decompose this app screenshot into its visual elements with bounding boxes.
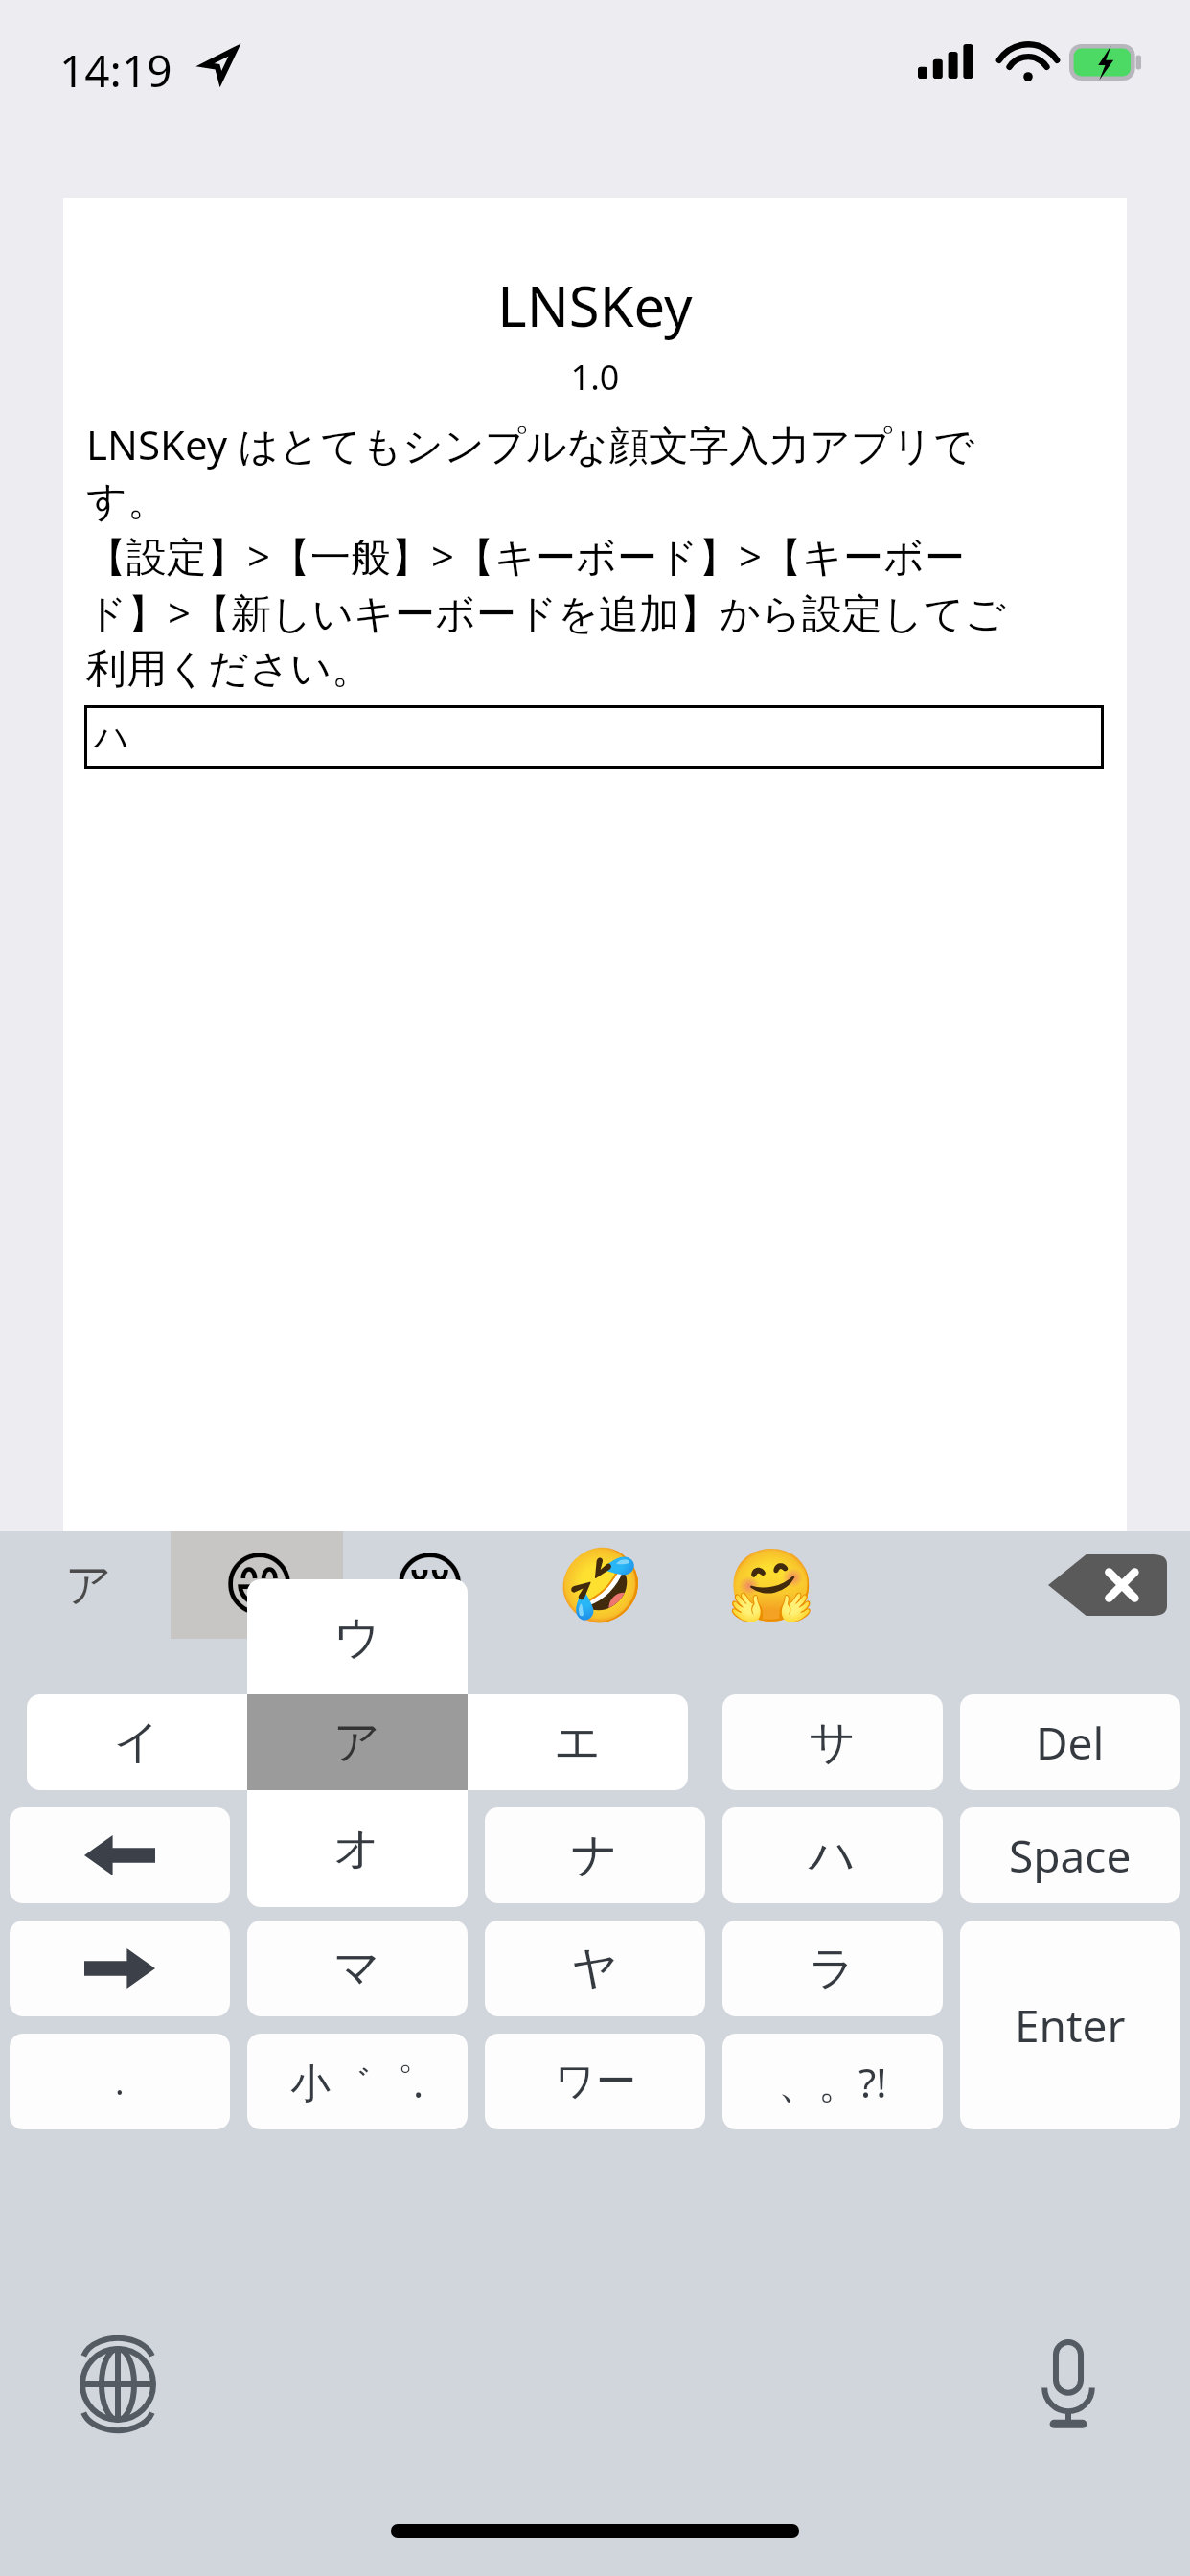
button[interactable]: ラ — [722, 1920, 943, 2016]
button[interactable]: Backspace — [1048, 1554, 1167, 1616]
button[interactable]: エ — [468, 1694, 688, 1790]
staticText: ウ — [333, 1609, 381, 1667]
staticText: Del — [1036, 1713, 1105, 1773]
button[interactable]: Move cursor right — [10, 1920, 230, 2016]
staticText: 🤣 — [557, 1544, 646, 1627]
button[interactable]: Del — [960, 1694, 1180, 1790]
button[interactable]: Space — [960, 1807, 1180, 1903]
button[interactable]: 小゛゜. — [247, 2034, 468, 2129]
button[interactable]: ア — [247, 1694, 468, 1790]
button[interactable]: サ — [722, 1694, 943, 1790]
button[interactable]: ハ — [722, 1807, 943, 1903]
staticText: 😢 — [393, 1544, 468, 1626]
staticText: 🤗 — [727, 1544, 816, 1627]
staticText: ハ — [94, 715, 129, 758]
staticText: LNSKey — [63, 267, 1127, 343]
staticText: 14:19 — [59, 40, 172, 101]
button[interactable]: 、。?! — [722, 2034, 943, 2129]
staticText: イ — [113, 1713, 161, 1771]
staticText: . — [115, 2058, 125, 2105]
button[interactable]: 😄 — [178, 1531, 341, 1639]
button[interactable]: オ — [247, 1790, 468, 1907]
button[interactable]: . — [10, 2034, 230, 2129]
button[interactable]: ハ — [84, 705, 1104, 769]
button[interactable]: ナ — [485, 1807, 705, 1903]
button[interactable]: Enter — [960, 1920, 1180, 2129]
staticText: ワー — [555, 2057, 636, 2107]
staticText: LNSKey はとてもシンプルな顔文字入力アプリです。 【設定】>【一般】>【キ… — [86, 417, 1044, 694]
staticText: ハ — [809, 1827, 857, 1884]
staticText: 1.0 — [63, 354, 1127, 401]
button[interactable]: 🤗 — [690, 1531, 853, 1639]
button[interactable]: Switch keyboard — [27, 2298, 209, 2471]
button[interactable]: ウ — [247, 1579, 468, 1696]
staticText: ヤ — [571, 1940, 619, 1997]
staticText: ラ — [809, 1940, 857, 1997]
staticText: ア — [65, 1556, 113, 1614]
staticText: 😄 — [222, 1544, 297, 1626]
staticText: ナ — [571, 1827, 619, 1884]
button[interactable]: Move cursor left — [10, 1807, 230, 1903]
staticText: 、。?! — [778, 2055, 887, 2109]
button[interactable]: ア — [8, 1531, 171, 1639]
staticText: オ — [333, 1820, 381, 1877]
button[interactable]: 😢 — [349, 1531, 512, 1639]
button[interactable]: Dictation — [977, 2298, 1159, 2471]
button[interactable]: ワー — [485, 2034, 705, 2129]
button[interactable]: 🤣 — [519, 1531, 682, 1639]
staticText: ア — [333, 1713, 381, 1771]
button[interactable]: ヤ — [485, 1920, 705, 2016]
staticText: 小゛゜. — [290, 2055, 424, 2109]
staticText: マ — [333, 1940, 381, 1997]
staticText: サ — [809, 1713, 857, 1771]
staticText: Enter — [1015, 1995, 1126, 2056]
staticText: エ — [554, 1713, 602, 1771]
button[interactable]: イ — [27, 1694, 247, 1790]
staticText: Space — [1009, 1826, 1132, 1886]
button[interactable]: マ — [247, 1920, 468, 2016]
